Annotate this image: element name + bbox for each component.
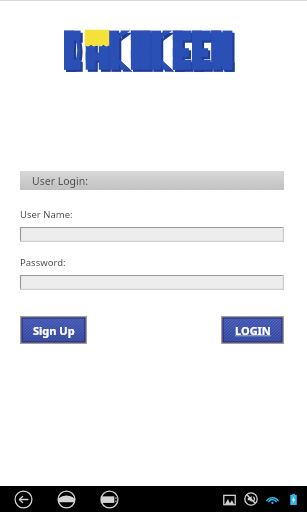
button[interactable]: Sign Up	[20, 316, 87, 344]
button[interactable]: LOGIN	[221, 316, 284, 344]
button[interactable]	[20, 227, 284, 242]
other: Battery charging	[287, 493, 300, 506]
other: Muted	[244, 492, 258, 506]
other: Screenshot	[223, 493, 236, 506]
button[interactable]: Back	[14, 490, 33, 509]
staticText: Sign Up	[33, 323, 75, 338]
staticText: User Login:	[32, 174, 89, 188]
staticText: User Name:	[20, 208, 73, 221]
other: Wi-Fi	[266, 493, 279, 506]
button[interactable]: Recent apps	[100, 490, 119, 509]
button[interactable]	[20, 275, 284, 290]
staticText: LOGIN	[235, 323, 271, 338]
staticText: Password:	[20, 256, 66, 269]
button[interactable]: Home	[57, 490, 76, 509]
